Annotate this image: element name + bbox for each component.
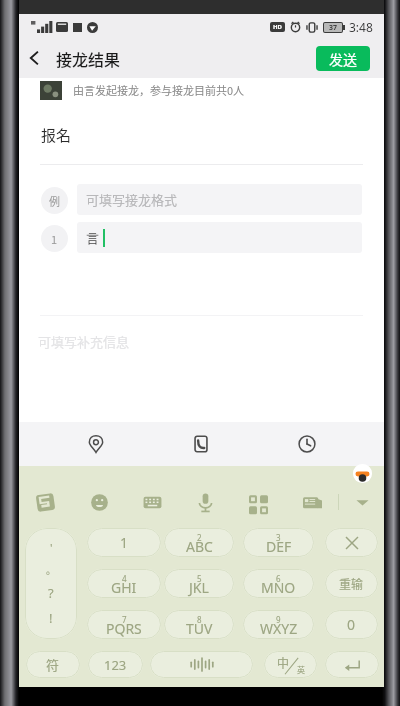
- button[interactable]: Contact card: [148, 422, 254, 466]
- staticText: 接龙结果: [56, 47, 121, 70]
- button[interactable]: 言: [77, 222, 362, 253]
- staticText: HD: [273, 23, 282, 31]
- staticText: 言: [86, 228, 100, 247]
- staticText: 6: [276, 573, 281, 584]
- staticText: TUV: [186, 619, 213, 638]
- button[interactable]: ': [25, 528, 77, 639]
- staticText: ': [50, 540, 53, 555]
- staticText: PQRS: [106, 619, 142, 638]
- staticText: 发送: [329, 49, 357, 69]
- staticText: 重输: [339, 575, 364, 592]
- button[interactable]: Delete: [325, 528, 378, 557]
- button[interactable]: Keyboard layout: [136, 486, 168, 518]
- staticText: 37: [329, 23, 338, 32]
- staticText: 4: [122, 573, 127, 584]
- button[interactable]: Mascot: [353, 464, 372, 483]
- staticText: 5: [197, 573, 202, 584]
- button[interactable]: Voice input: [150, 651, 253, 678]
- staticText: 123: [104, 656, 127, 674]
- button[interactable]: 123: [88, 651, 143, 678]
- button[interactable]: Clipboard: [296, 486, 328, 518]
- staticText: 英: [297, 664, 305, 676]
- button[interactable]: Back: [20, 44, 48, 72]
- staticText: 报名: [41, 124, 72, 146]
- staticText: 可填写接龙格式: [86, 190, 178, 209]
- button[interactable]: Enter: [325, 651, 379, 678]
- button[interactable]: 9: [243, 610, 314, 639]
- button[interactable]: 中: [264, 651, 317, 678]
- staticText: 由言发起接龙，参与接龙目前共0人: [73, 82, 245, 98]
- staticText: GHI: [111, 578, 137, 597]
- button[interactable]: 1: [87, 528, 161, 557]
- staticText: 8: [197, 614, 202, 625]
- button[interactable]: Voice input: [189, 486, 221, 518]
- button[interactable]: 可填写接龙格式: [77, 184, 362, 215]
- button[interactable]: Time: [254, 422, 360, 466]
- button[interactable]: 8: [164, 610, 234, 639]
- staticText: 9: [276, 614, 281, 625]
- staticText: 1: [120, 533, 129, 552]
- button[interactable]: 2: [164, 528, 234, 557]
- button[interactable]: Location: [43, 422, 148, 466]
- staticText: 。: [46, 562, 56, 576]
- button[interactable]: 接龙结果: [56, 44, 121, 72]
- staticText: JKL: [189, 578, 209, 597]
- staticText: 7: [122, 614, 127, 625]
- button[interactable]: 6: [243, 569, 314, 598]
- button[interactable]: 7: [87, 610, 161, 639]
- staticText: 1: [51, 231, 58, 247]
- button[interactable]: 5: [164, 569, 234, 598]
- button[interactable]: 3: [243, 528, 314, 557]
- button[interactable]: More apps: [242, 486, 274, 518]
- staticText: 符: [46, 655, 60, 674]
- staticText: DEF: [266, 537, 292, 556]
- button[interactable]: 发送: [316, 46, 370, 71]
- staticText: !: [49, 609, 53, 627]
- staticText: MNO: [261, 578, 296, 597]
- button[interactable]: Emoji: [83, 486, 115, 518]
- button[interactable]: 符: [26, 651, 80, 678]
- button[interactable]: Hide keyboard: [346, 486, 378, 518]
- button[interactable]: 重输: [325, 569, 378, 598]
- staticText: WXYZ: [260, 619, 298, 638]
- staticText: ABC: [186, 537, 213, 556]
- staticText: 3: [276, 532, 281, 543]
- staticText: 可填写补充信息: [38, 332, 130, 351]
- button[interactable]: 0: [325, 610, 378, 639]
- button[interactable]: Input method: [29, 486, 61, 518]
- staticText: 3:48: [349, 19, 373, 35]
- staticText: ?: [48, 584, 54, 602]
- staticText: 例: [49, 193, 60, 209]
- button[interactable]: 4: [87, 569, 161, 598]
- staticText: 中: [277, 654, 290, 671]
- staticText: 0: [347, 615, 356, 634]
- staticText: 2: [197, 532, 202, 543]
